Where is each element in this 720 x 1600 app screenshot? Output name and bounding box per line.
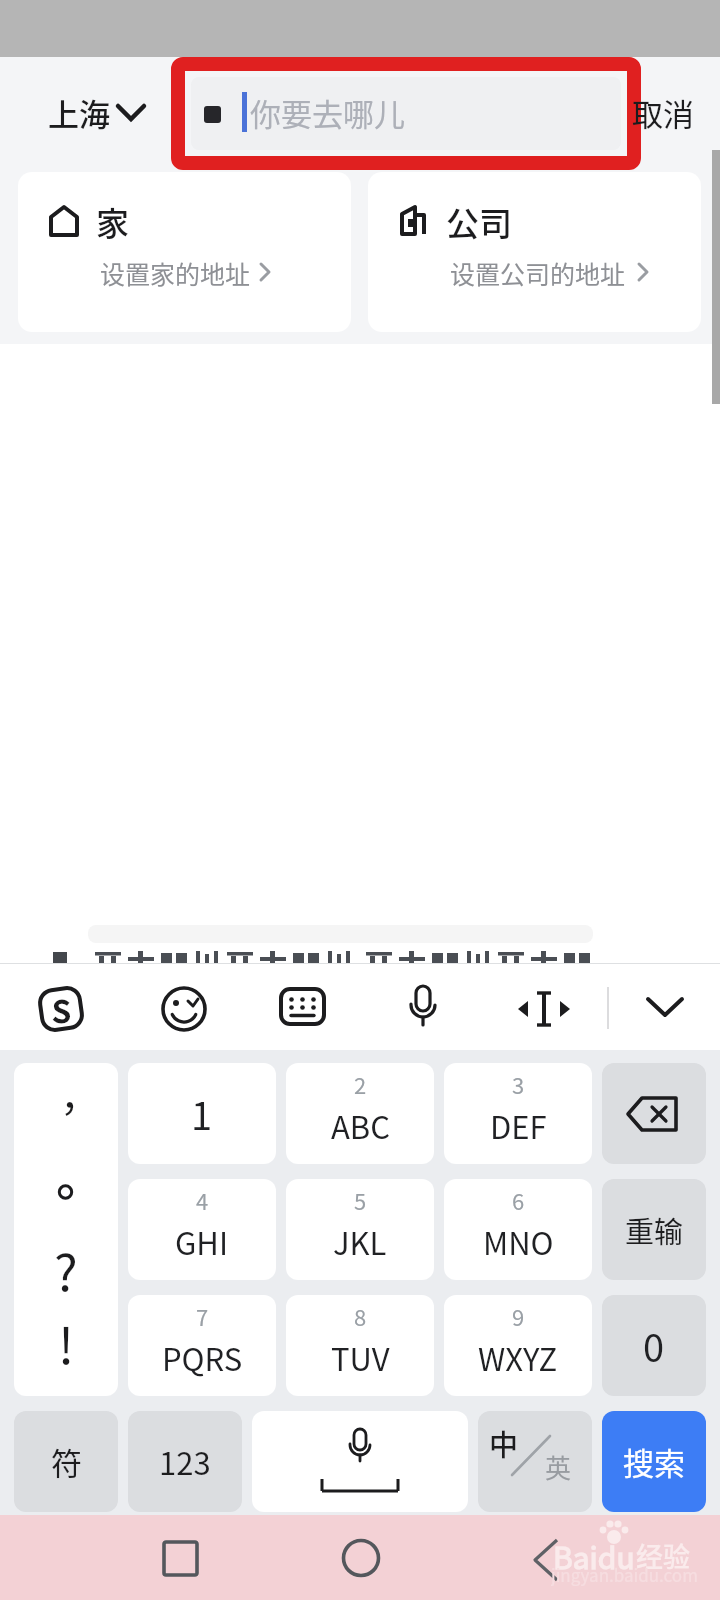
button[interactable]	[515, 984, 573, 1034]
staticText: 你要去哪儿	[250, 90, 405, 135]
staticText: 家	[96, 198, 129, 246]
staticText: 经验	[636, 1536, 690, 1574]
staticText: 英	[545, 1448, 572, 1486]
button[interactable]: 5	[286, 1179, 434, 1280]
staticText: TUV	[331, 1335, 390, 1380]
button[interactable]	[252, 1411, 468, 1512]
staticText: 上海	[48, 90, 110, 135]
staticText: WXYZ	[478, 1335, 558, 1380]
button[interactable]: 家	[18, 172, 351, 332]
staticText: 搜索	[623, 1439, 685, 1484]
staticText: 符	[51, 1439, 82, 1484]
staticText: 8	[354, 1300, 367, 1332]
button[interactable]	[331, 1528, 391, 1588]
button[interactable]: 重输	[602, 1179, 706, 1280]
staticText: ABC	[331, 1103, 390, 1148]
button[interactable]: 2	[286, 1063, 434, 1164]
button[interactable]: 7	[128, 1295, 276, 1396]
button[interactable]: 取消	[628, 88, 698, 136]
staticText: 123	[159, 1439, 211, 1484]
button[interactable]: 0	[602, 1295, 706, 1396]
staticText: 公司	[446, 198, 512, 246]
button[interactable]: 搜索	[602, 1411, 706, 1512]
staticText: PQRS	[162, 1335, 243, 1380]
button[interactable]: 9	[444, 1295, 592, 1396]
staticText: GHI	[175, 1219, 229, 1264]
button[interactable]: 符	[14, 1411, 118, 1512]
staticText: ，	[60, 1065, 100, 1123]
button[interactable]	[515, 1528, 575, 1588]
staticText: 5	[354, 1184, 367, 1216]
button[interactable]: 4	[128, 1179, 276, 1280]
button[interactable]: 6	[444, 1179, 592, 1280]
staticText: ?	[54, 1233, 78, 1305]
staticText: DEF	[490, 1103, 547, 1148]
staticText: 4	[196, 1184, 209, 1216]
button[interactable]	[637, 984, 693, 1034]
staticText: JKL	[333, 1219, 387, 1264]
staticText: 设置公司的地址	[450, 255, 626, 291]
button[interactable]: 上海	[44, 88, 154, 136]
button[interactable]	[602, 1063, 706, 1164]
staticText: 2	[354, 1068, 367, 1100]
staticText: 0	[643, 1318, 665, 1373]
button[interactable]: 中	[478, 1411, 592, 1512]
staticText: 3	[512, 1068, 525, 1100]
button[interactable]	[191, 77, 621, 150]
button[interactable]: ，	[14, 1063, 118, 1396]
staticText: Baidu	[553, 1534, 635, 1574]
button[interactable]: 3	[444, 1063, 592, 1164]
staticText: 设置家的地址	[100, 255, 251, 291]
staticText: 7	[196, 1300, 209, 1332]
button[interactable]: 123	[128, 1411, 242, 1512]
staticText: 6	[512, 1184, 525, 1216]
button[interactable]: S	[36, 984, 86, 1034]
button[interactable]	[401, 984, 445, 1034]
button[interactable]: 1	[128, 1063, 276, 1164]
staticText: 9	[512, 1300, 525, 1332]
staticText: 1	[191, 1086, 213, 1141]
staticText: MNO	[483, 1219, 554, 1264]
staticText: 取消	[632, 90, 694, 135]
button[interactable]	[150, 1528, 210, 1588]
staticText: S	[52, 987, 71, 1032]
staticText: jingyan.baidu.com	[551, 1562, 698, 1586]
staticText: 重输	[625, 1209, 684, 1251]
button[interactable]: 公司	[368, 172, 701, 332]
button[interactable]	[159, 984, 209, 1034]
button[interactable]: 8	[286, 1295, 434, 1396]
button[interactable]	[279, 984, 329, 1034]
staticText: 中	[489, 1422, 519, 1464]
staticText: !	[58, 1306, 75, 1378]
